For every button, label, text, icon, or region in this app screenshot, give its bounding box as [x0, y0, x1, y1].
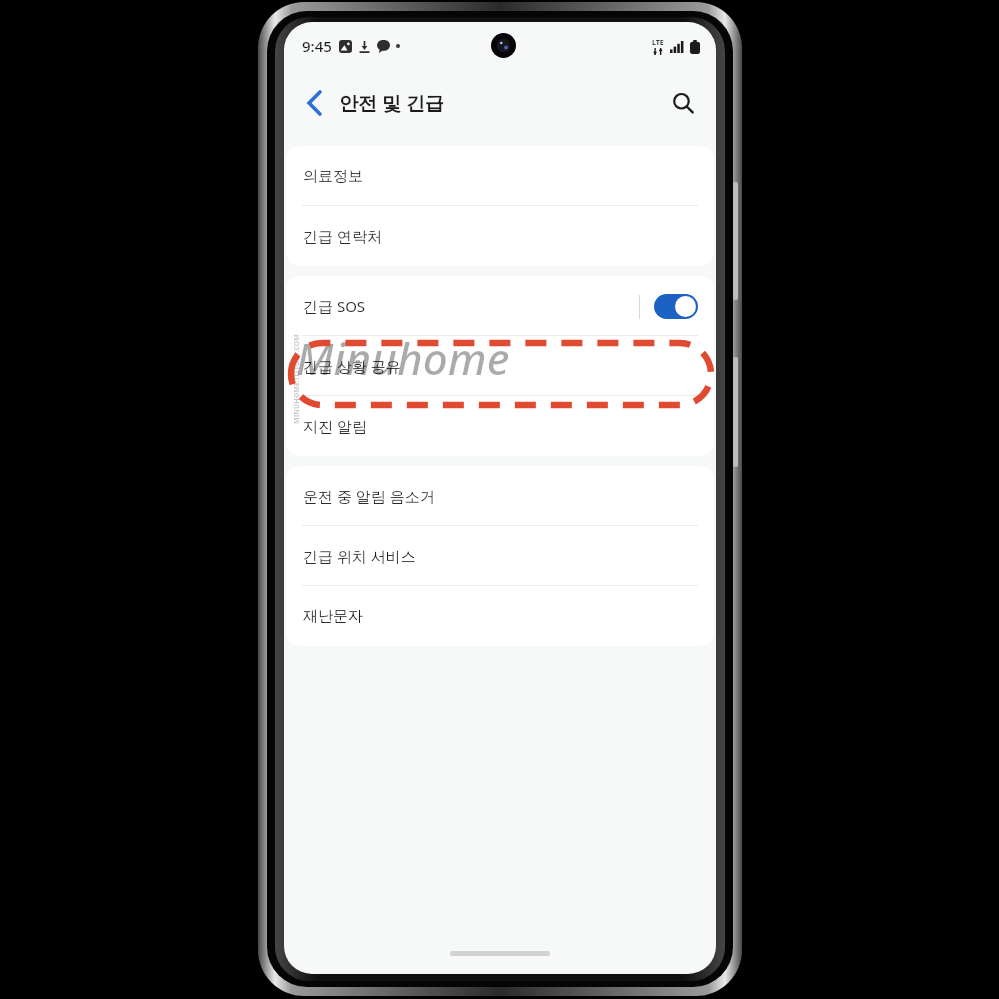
staticText: 긴급 상황 공유: [303, 356, 401, 376]
staticText: 9:45: [302, 36, 332, 56]
staticText: 재난문자: [303, 607, 363, 626]
button[interactable]: 검색: [662, 82, 704, 124]
staticText: 의료정보: [303, 167, 363, 186]
staticText: 지진 알림: [303, 416, 367, 436]
button[interactable]: 재난문자: [286, 586, 714, 646]
button[interactable]: 지진 알림: [286, 396, 714, 456]
button[interactable]: 의료정보: [286, 146, 714, 206]
staticText: 긴급 연락처: [303, 226, 382, 246]
button[interactable]: 뒤로 가기: [293, 82, 335, 124]
staticText: LTE: [652, 38, 664, 48]
button[interactable]: 긴급 연락처: [286, 206, 714, 266]
staticText: 긴급 SOS: [303, 296, 366, 316]
button[interactable]: 긴급 SOS: [286, 276, 714, 336]
staticText: Minuhome: [296, 328, 510, 388]
button[interactable]: 긴급 상황 공유: [286, 336, 714, 396]
staticText: 안전 및 긴급: [339, 90, 444, 116]
staticText: 긴급 위치 서비스: [303, 546, 416, 566]
staticText: MINUHOME.TISTORY.COM: [292, 334, 302, 424]
button[interactable]: 긴급 위치 서비스: [286, 526, 714, 586]
button[interactable]: 운전 중 알림 음소거: [286, 466, 714, 526]
staticText: 운전 중 알림 음소거: [303, 486, 435, 506]
button[interactable]: 긴급 SOS 켜짐: [654, 294, 698, 319]
